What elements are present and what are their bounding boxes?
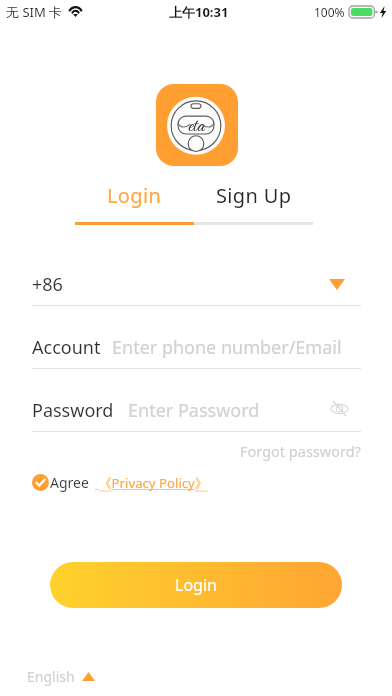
staticText: 上午10:31 [169, 3, 229, 21]
staticText: Enter Password [128, 398, 260, 423]
staticText: Account [32, 335, 101, 360]
staticText: Password [32, 398, 114, 423]
staticText: 无 SIM 卡 [6, 3, 63, 21]
button[interactable]: Login [75, 173, 194, 218]
staticText: Login [175, 574, 217, 596]
staticText: Enter phone number/Email [112, 335, 342, 360]
button[interactable]: Sign Up [194, 173, 313, 218]
staticText: eta [188, 114, 205, 134]
button[interactable]: 《Privacy Policy》 [95, 472, 212, 494]
staticText: Agree [50, 473, 89, 492]
staticText: Forgot password? [240, 441, 361, 461]
staticText: Sign Up [216, 182, 292, 209]
staticText: +86 [32, 272, 63, 297]
button[interactable]: Forgot password? [201, 438, 361, 464]
button[interactable]: Agree [32, 471, 89, 493]
staticText: 《Privacy Policy》 [95, 474, 212, 492]
staticText: 100% [314, 4, 345, 20]
button[interactable]: Login [50, 562, 342, 608]
button[interactable]: +86 [32, 264, 361, 305]
staticText: English [27, 667, 75, 686]
staticText: Login [107, 182, 162, 209]
staticText: eta [188, 114, 205, 134]
button[interactable]: Show password [324, 393, 354, 423]
button[interactable]: English [27, 664, 95, 688]
